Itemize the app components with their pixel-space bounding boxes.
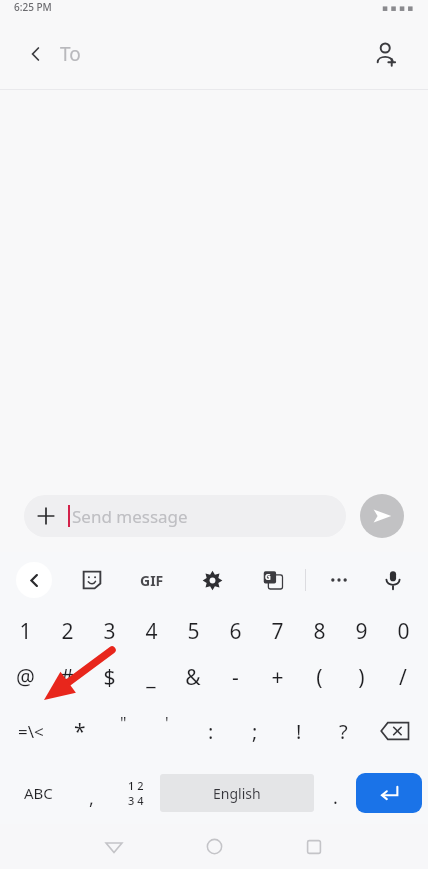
button[interactable]: 1 [4, 608, 46, 654]
staticText: 6 [229, 617, 242, 646]
button[interactable]: / [382, 654, 424, 700]
staticText: G [265, 571, 271, 582]
button[interactable]: ? [321, 700, 365, 762]
button[interactable]: =\< [4, 700, 58, 762]
staticText: =\< [18, 720, 44, 743]
button[interactable]: Numbers [112, 762, 160, 824]
button[interactable]: # [46, 654, 88, 700]
button[interactable]: More options [322, 563, 356, 597]
staticText: To [60, 41, 81, 67]
button[interactable]: Voice input [376, 563, 410, 597]
staticText: $ [103, 663, 116, 692]
staticText: 2 [61, 617, 74, 646]
staticText: ABC [24, 783, 53, 803]
button[interactable]: Backspace [365, 700, 424, 762]
button[interactable]: English [160, 774, 314, 812]
staticText: ? [339, 718, 348, 745]
button[interactable]: Add recipient [364, 32, 408, 76]
button[interactable]: 9 [340, 608, 382, 654]
button[interactable]: 8 [298, 608, 340, 654]
staticText: _ [146, 663, 156, 692]
button[interactable]: Stickers [75, 563, 109, 597]
staticText: 8 [313, 617, 326, 646]
button[interactable]: * [58, 700, 101, 762]
button[interactable]: $ [88, 654, 130, 700]
staticText: Send message [72, 505, 188, 528]
staticText: . [333, 785, 338, 810]
button[interactable]: Settings [195, 563, 229, 597]
staticText: ; [252, 718, 258, 745]
staticText: 1 [19, 617, 32, 646]
staticText: ' [165, 712, 169, 734]
staticText: 0 [397, 617, 410, 646]
button[interactable]: Send message [24, 495, 346, 537]
button[interactable]: 2 [46, 608, 88, 654]
staticText: 7 [271, 617, 284, 646]
staticText: * [74, 717, 86, 746]
button[interactable]: + [256, 654, 298, 700]
button[interactable]: ) [340, 654, 382, 700]
button[interactable]: . [314, 762, 356, 824]
staticText: 3 4 [128, 793, 144, 808]
button[interactable]: Recents [264, 824, 364, 869]
staticText: ( [316, 663, 323, 692]
button[interactable]: 5 [172, 608, 214, 654]
button[interactable]: Enter [356, 773, 422, 813]
staticText: 1 2 [128, 778, 144, 793]
staticText: - [232, 663, 239, 692]
button[interactable]: Back [64, 824, 164, 869]
button[interactable]: " [101, 700, 145, 762]
staticText: 9 [355, 617, 368, 646]
staticText: 6:25 PM [14, 0, 52, 14]
staticText: 3 [103, 617, 116, 646]
staticText: @ [16, 663, 35, 692]
button[interactable]: GIF [136, 567, 168, 594]
staticText: & [185, 663, 201, 692]
button[interactable]: Back [16, 34, 56, 74]
staticText: + [271, 663, 284, 692]
button[interactable]: 7 [256, 608, 298, 654]
button[interactable]: Send [360, 494, 404, 538]
staticText: # [60, 663, 74, 692]
button[interactable]: _ [130, 654, 172, 700]
button[interactable]: ; [233, 700, 277, 762]
button[interactable]: 0 [382, 608, 424, 654]
button[interactable]: ! [277, 700, 321, 762]
button[interactable]: Close toolbar [16, 562, 52, 598]
button[interactable]: , [70, 762, 112, 824]
button[interactable]: To [60, 41, 364, 67]
staticText: ▪ ▪ ▪ ▪ [382, 1, 414, 13]
button[interactable]: & [172, 654, 214, 700]
button[interactable]: @ [4, 654, 46, 700]
button[interactable]: Translate [256, 563, 290, 597]
button[interactable]: ABC [6, 762, 70, 824]
staticText: : [208, 718, 214, 745]
staticText: English [213, 784, 261, 803]
staticText: ! [296, 718, 302, 745]
staticText: , [89, 786, 94, 811]
staticText: 5 [187, 617, 200, 646]
button[interactable]: ( [298, 654, 340, 700]
button[interactable]: ' [145, 700, 189, 762]
button[interactable]: 4 [130, 608, 172, 654]
button[interactable]: 3 [88, 608, 130, 654]
staticText: / [399, 663, 407, 692]
staticText: " [120, 712, 127, 734]
staticText: ) [358, 663, 365, 692]
button[interactable]: : [189, 700, 233, 762]
button[interactable]: Home [164, 824, 264, 869]
staticText: 4 [145, 617, 158, 646]
button[interactable]: 6 [214, 608, 256, 654]
button[interactable]: - [214, 654, 256, 700]
staticText: GIF [140, 571, 164, 590]
